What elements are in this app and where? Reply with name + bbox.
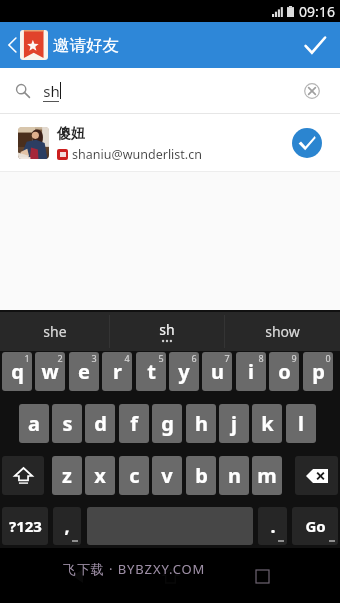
button[interactable]: i [236,352,266,391]
button[interactable]: a [19,404,49,443]
staticText: 4 [124,352,130,364]
staticText: e [78,358,90,385]
staticText: q [11,358,24,385]
button[interactable]: g [152,404,182,443]
button[interactable]: b [186,456,216,495]
staticText: . [270,514,276,539]
button[interactable]: f [119,404,149,443]
staticText: 0 [325,352,331,364]
button[interactable]: Backspace [295,456,338,495]
staticText: sh [159,320,175,339]
button[interactable]: l [286,404,316,443]
button[interactable]: s [52,404,82,443]
button[interactable]: m [252,456,282,495]
staticText: h [195,410,208,437]
button[interactable]: Done [290,22,340,68]
staticText: o [278,358,291,385]
staticText: r [113,358,122,385]
staticText: 6 [191,352,197,364]
staticText: n [228,462,241,489]
staticText: 1 [24,352,30,364]
button[interactable]: q [2,352,32,391]
staticText: 傻妞 [57,125,85,143]
button[interactable]: o [269,352,299,391]
staticText: i [248,358,254,385]
button[interactable]: Home [140,554,200,598]
button[interactable]: u [202,352,232,391]
button[interactable]: v [152,456,182,495]
button[interactable]: . [258,507,287,545]
button[interactable]: d [85,404,115,443]
staticText: m [257,462,277,489]
button[interactable]: j [219,404,249,443]
staticText: k [261,410,274,437]
staticText: she [43,322,67,341]
staticText: u [211,358,224,385]
staticText: l [298,410,304,437]
staticText: 2 [57,352,63,364]
button[interactable]: y [169,352,199,391]
staticText: c [129,462,140,489]
staticText: f [130,410,138,437]
button[interactable]: h [186,404,216,443]
button[interactable]: Back [48,554,108,598]
staticText: j [231,410,237,437]
button[interactable]: Back [0,22,56,68]
button[interactable]: n [219,456,249,495]
button[interactable]: , [53,507,81,545]
staticText: Go [305,516,326,536]
staticText: sh [43,81,60,101]
button[interactable]: k [252,404,282,443]
button[interactable]: p [303,352,333,391]
button[interactable]: Clear search [292,68,332,114]
button[interactable]: Shift [2,456,44,495]
staticText: 09:16 [299,2,335,21]
button[interactable]: show [225,312,340,351]
button[interactable]: e [69,352,99,391]
staticText: s [62,410,73,437]
button[interactable]: 傻妞 [0,114,340,172]
staticText: g [161,410,174,437]
button[interactable]: Go [292,507,338,545]
staticText: z [62,462,72,489]
staticText: p [312,358,325,385]
button[interactable]: ?123 [2,507,48,545]
staticText: , [64,514,70,539]
staticText: 7 [224,352,230,364]
button[interactable]: w [35,352,65,391]
button[interactable]: r [102,352,132,391]
button[interactable]: Recent apps [232,554,292,598]
staticText: 9 [291,352,297,364]
staticText: 8 [258,352,264,364]
staticText: w [41,358,59,385]
staticText: y [178,358,190,385]
button[interactable]: sh [110,312,224,351]
staticText: 飞下载 · BYBZXY.COM [63,560,206,578]
button[interactable]: z [52,456,82,495]
staticText: x [94,462,106,489]
button[interactable]: she [0,312,109,351]
staticText: ?123 [9,516,42,536]
button[interactable]: t [136,352,166,391]
staticText: 邀请好友 [53,35,119,56]
button[interactable]: Selected [285,114,328,172]
staticText: t [147,358,156,385]
staticText: 5 [158,352,164,364]
button[interactable]: x [85,456,115,495]
staticText: a [28,410,40,437]
staticText: b [195,462,208,489]
staticText: show [265,322,300,341]
staticText: d [94,410,107,437]
staticText: shaniu@wunderlist.cn [72,146,202,163]
button[interactable]: c [119,456,149,495]
staticText: v [161,462,173,489]
staticText: 3 [91,352,97,364]
